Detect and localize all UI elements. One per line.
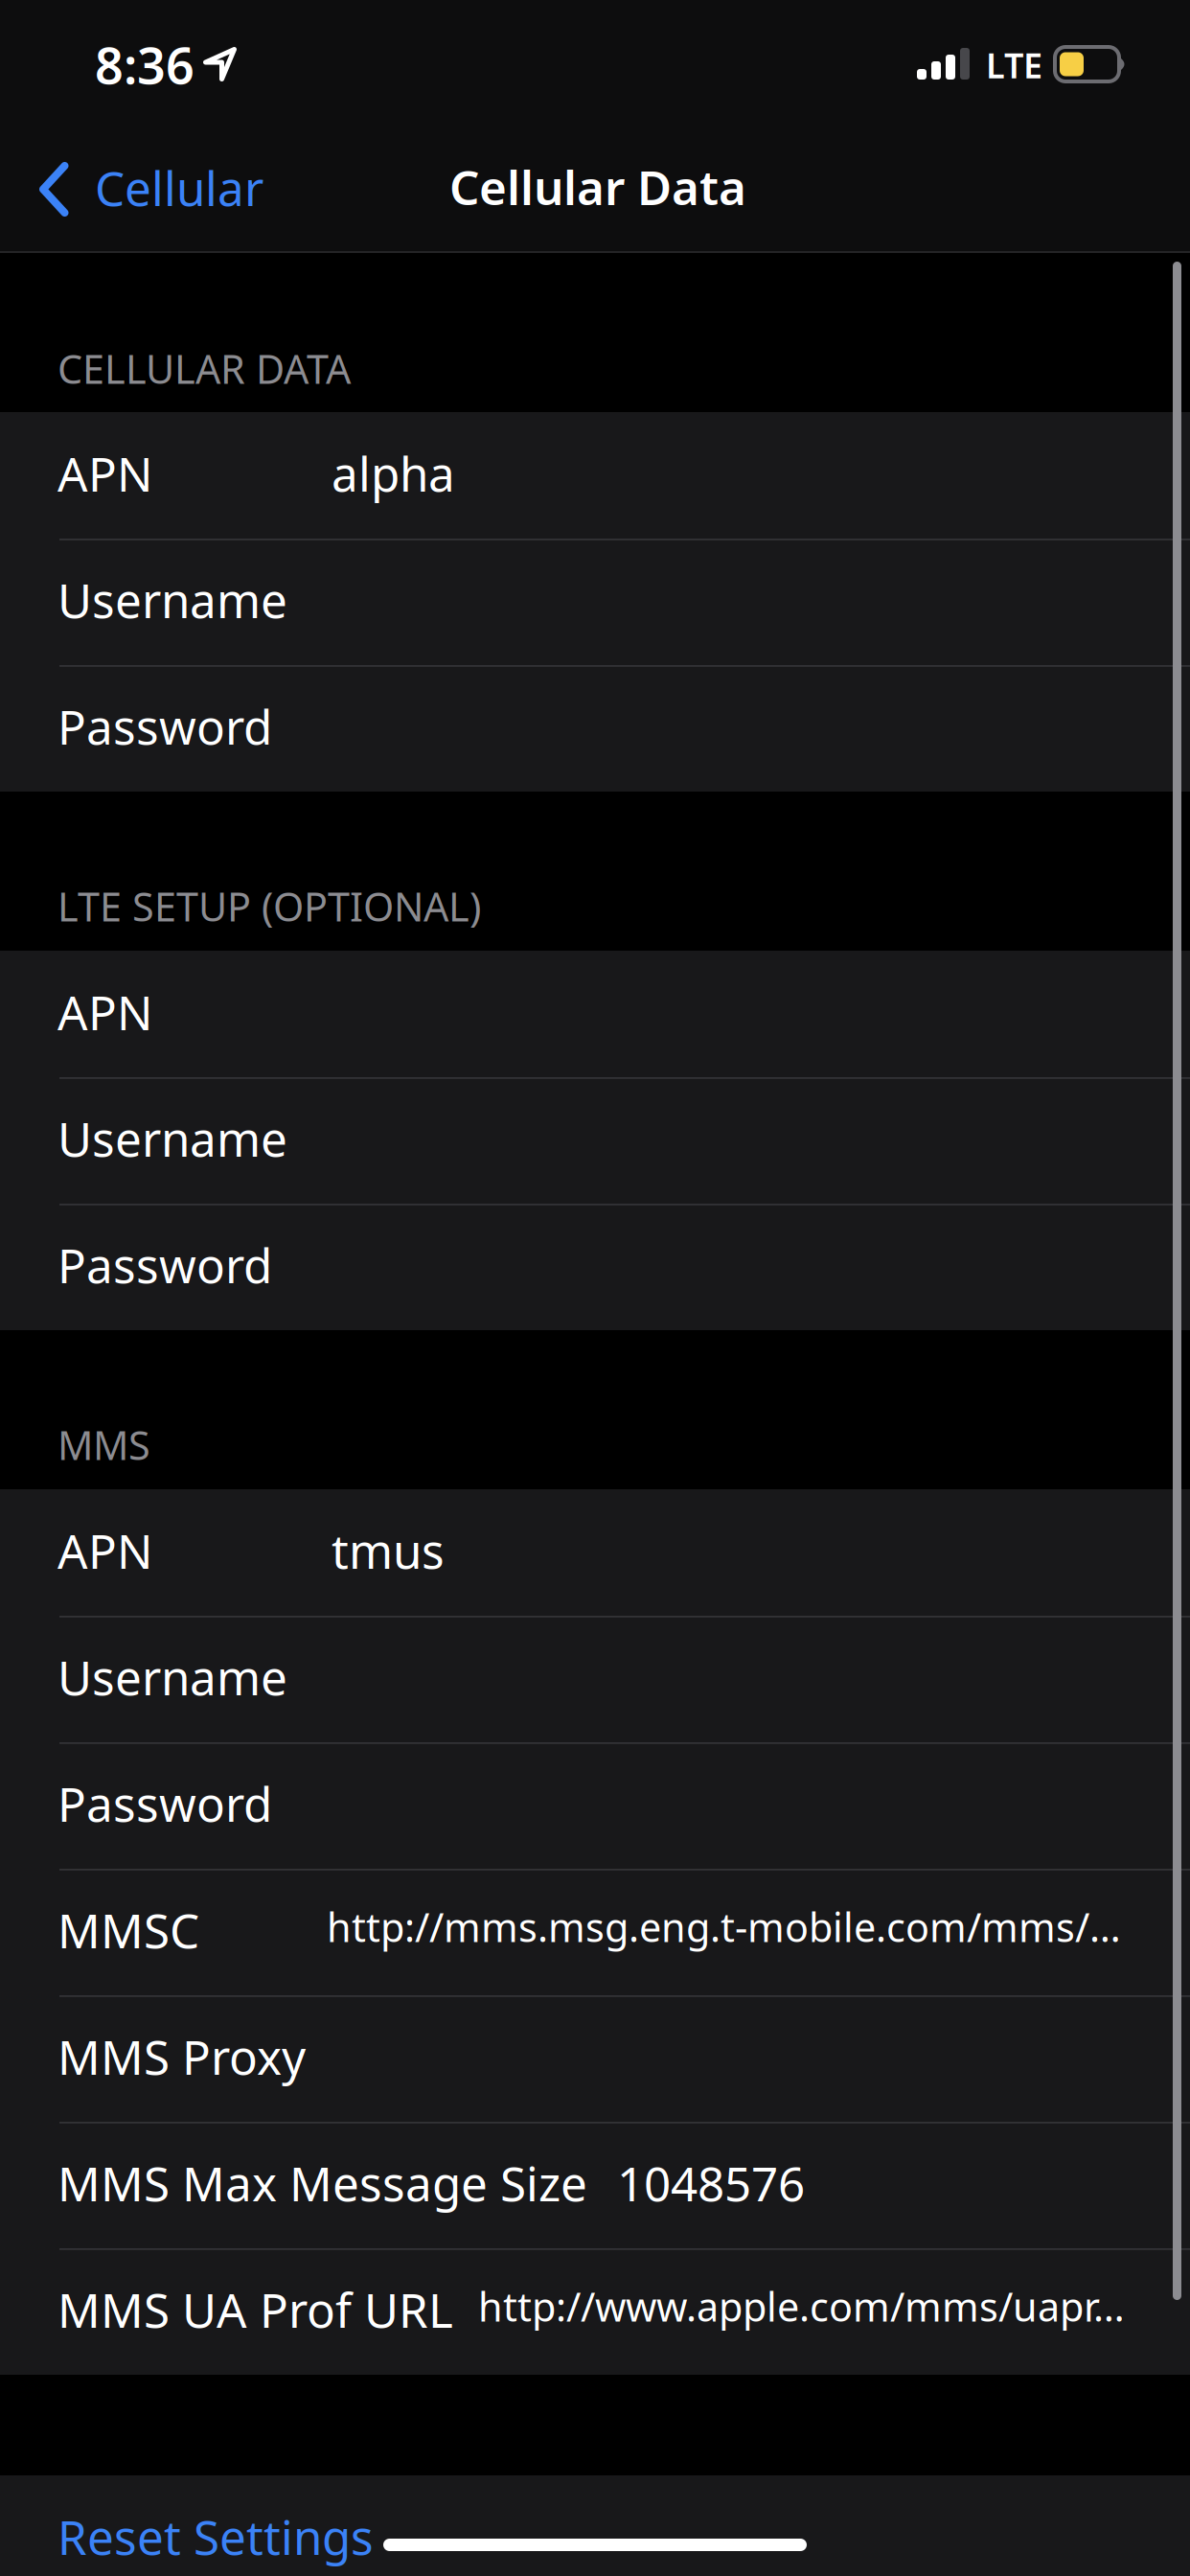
staticText: APN bbox=[57, 442, 152, 505]
staticText: Username bbox=[57, 1107, 287, 1170]
staticText: APN bbox=[57, 1519, 152, 1582]
button[interactable]: MMS Proxy bbox=[0, 1995, 1190, 2122]
button[interactable]: APN bbox=[0, 1489, 1190, 1616]
button[interactable]: Reset Settings bbox=[0, 2475, 1190, 2576]
button[interactable]: APN bbox=[0, 412, 1190, 539]
button[interactable]: Username bbox=[0, 1077, 1190, 1204]
staticText: Cellular Data bbox=[449, 155, 746, 218]
button[interactable]: Password bbox=[0, 1204, 1190, 1330]
staticText: Username bbox=[57, 568, 287, 631]
staticText: Password bbox=[57, 1233, 272, 1296]
button[interactable]: Cellular bbox=[0, 139, 287, 239]
staticText: CELLULAR DATA bbox=[57, 342, 351, 395]
staticText: Reset Settings bbox=[57, 2505, 374, 2568]
staticText: MMS Max Message Size bbox=[57, 2151, 587, 2214]
button[interactable]: APN bbox=[0, 951, 1190, 1077]
staticText: http://mms.msg.eng.t-mobile.com/mms/… bbox=[327, 1900, 1121, 1953]
button[interactable]: Username bbox=[0, 539, 1190, 665]
button[interactable]: MMS Max Message Size bbox=[0, 2122, 1190, 2248]
staticText: 1048576 bbox=[617, 2151, 805, 2214]
staticText: Password bbox=[57, 1772, 272, 1835]
staticText: APN bbox=[57, 980, 152, 1043]
button[interactable]: MMSC bbox=[0, 1869, 1190, 1995]
button[interactable]: Username bbox=[0, 1616, 1190, 1742]
staticText: alpha bbox=[332, 442, 455, 505]
staticText: tmus bbox=[332, 1519, 445, 1582]
staticText: MMSC bbox=[57, 1898, 199, 1961]
staticText: Password bbox=[57, 695, 272, 758]
staticText: MMS Proxy bbox=[57, 2025, 306, 2088]
button[interactable]: MMS UA Prof URL bbox=[0, 2248, 1190, 2375]
staticText: 8:36 bbox=[95, 32, 195, 98]
staticText: http://www.apple.com/mms/uapr… bbox=[478, 2280, 1125, 2332]
button[interactable]: Password bbox=[0, 1742, 1190, 1869]
staticText: Username bbox=[57, 1645, 287, 1708]
staticText: MMS bbox=[57, 1418, 150, 1471]
staticText: LTE bbox=[986, 42, 1042, 88]
staticText: LTE SETUP (OPTIONAL) bbox=[57, 880, 481, 932]
staticText: Cellular bbox=[95, 156, 263, 219]
staticText: MMS UA Prof URL bbox=[57, 2278, 453, 2341]
button[interactable]: Password bbox=[0, 665, 1190, 792]
